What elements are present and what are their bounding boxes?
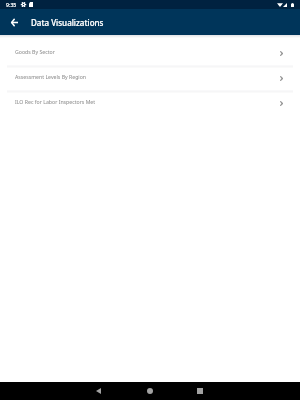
button[interactable]: ILO Rec for Labor Inspectors Met bbox=[0, 89, 300, 114]
button[interactable]: Home bbox=[141, 382, 159, 400]
button[interactable]: Recents bbox=[191, 382, 209, 400]
staticText: Data Visualizations bbox=[31, 17, 104, 28]
staticText: 9:35 bbox=[6, 1, 17, 8]
button[interactable]: Back bbox=[5, 13, 23, 31]
button[interactable]: Assessment Levels By Region bbox=[0, 64, 300, 89]
staticText: Assessment Levels By Region bbox=[15, 73, 87, 80]
button[interactable]: Goods By Sector bbox=[0, 39, 300, 64]
staticText: Goods By Sector bbox=[15, 48, 55, 55]
staticText: ILO Rec for Labor Inspectors Met bbox=[15, 98, 96, 105]
button[interactable]: Back bbox=[89, 382, 107, 400]
